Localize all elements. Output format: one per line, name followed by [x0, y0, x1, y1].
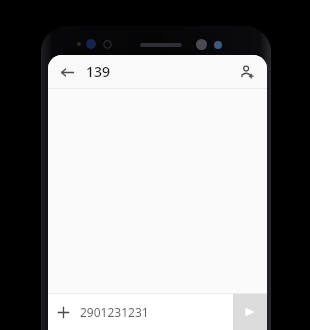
button[interactable]: Attach: [48, 297, 78, 327]
staticText: 2901231231: [80, 304, 149, 320]
staticText: 139: [86, 62, 111, 81]
button[interactable]: Back: [52, 57, 82, 87]
button[interactable]: 2901231231: [80, 294, 233, 330]
button[interactable]: Add contact: [232, 57, 262, 87]
button[interactable]: Send: [233, 294, 267, 330]
